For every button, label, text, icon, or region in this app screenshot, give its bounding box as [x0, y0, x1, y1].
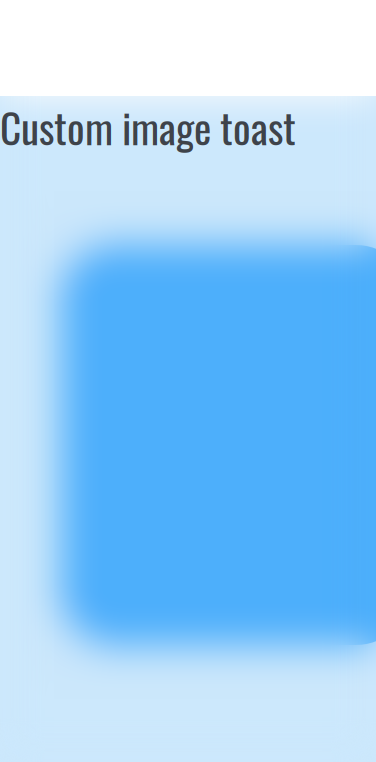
staticText: Custom image toast: [40, 98, 336, 159]
